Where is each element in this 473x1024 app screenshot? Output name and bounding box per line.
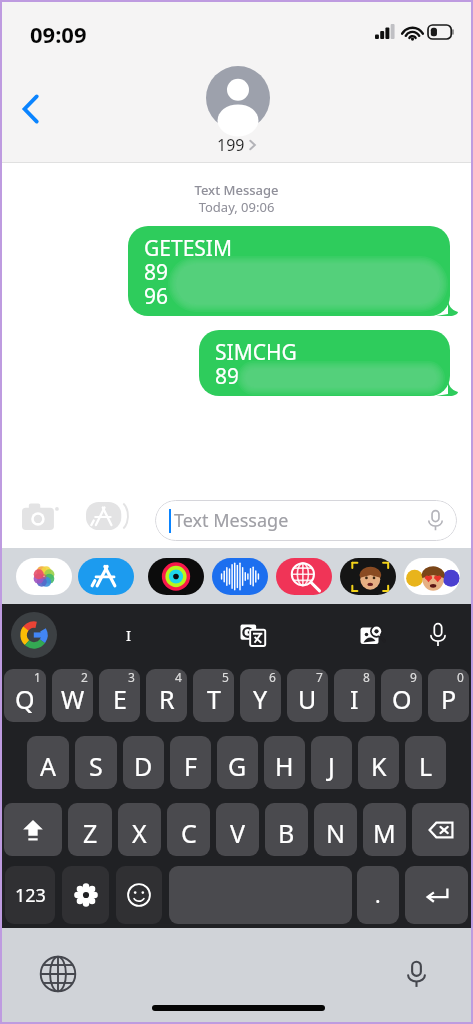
staticText: M bbox=[373, 816, 396, 850]
staticText: 3 bbox=[128, 669, 135, 685]
button[interactable]: Lens bbox=[356, 619, 388, 651]
button[interactable]: F bbox=[170, 736, 211, 789]
staticText: F bbox=[184, 749, 197, 783]
button[interactable]: Y bbox=[240, 669, 281, 722]
staticText: Text Message bbox=[0, 181, 473, 199]
button[interactable]: Switch keyboard bbox=[40, 956, 76, 992]
button[interactable]: L bbox=[405, 736, 446, 789]
staticText: 7 bbox=[316, 669, 323, 685]
staticText: 96 bbox=[144, 282, 169, 306]
button[interactable]: B bbox=[265, 803, 308, 856]
staticText: B bbox=[278, 816, 295, 850]
button[interactable]: Camera bbox=[16, 496, 62, 536]
staticText: H bbox=[275, 749, 294, 783]
button[interactable]: X bbox=[118, 803, 161, 856]
staticText: 89 bbox=[215, 362, 240, 386]
button[interactable]: Backspace bbox=[412, 803, 469, 856]
button[interactable]: GETESIM bbox=[128, 226, 458, 316]
staticText: 0 bbox=[457, 669, 464, 685]
button[interactable]: Photos bbox=[16, 558, 72, 595]
staticText: S bbox=[89, 749, 103, 783]
button[interactable]: Google bbox=[11, 612, 57, 658]
staticText: T bbox=[207, 682, 221, 716]
button[interactable]: Dictation bbox=[398, 956, 434, 992]
button[interactable]: R bbox=[146, 669, 187, 722]
button[interactable]: S bbox=[75, 736, 117, 789]
staticText: Q bbox=[15, 682, 35, 716]
button[interactable]: C bbox=[167, 803, 210, 856]
staticText: 123 bbox=[15, 883, 46, 908]
button[interactable]: SIMCHG bbox=[199, 330, 458, 396]
staticText: N bbox=[326, 816, 346, 850]
button[interactable]: . bbox=[357, 866, 399, 924]
button[interactable]: N bbox=[314, 803, 357, 856]
button[interactable]: U bbox=[287, 669, 328, 722]
button[interactable]: Back bbox=[8, 86, 54, 132]
button[interactable]: Z bbox=[68, 803, 112, 856]
staticText: SIMCHG bbox=[215, 338, 297, 362]
staticText: 6 bbox=[269, 669, 276, 685]
button[interactable]: M bbox=[363, 803, 406, 856]
staticText: K bbox=[371, 749, 387, 783]
staticText: 2 bbox=[81, 669, 88, 685]
staticText: Y bbox=[253, 682, 268, 716]
staticText: D bbox=[134, 749, 153, 783]
button[interactable]: Text Message bbox=[155, 500, 457, 541]
staticText: V bbox=[230, 816, 246, 850]
button[interactable]: V bbox=[216, 803, 259, 856]
button[interactable]: Memoji sticker bbox=[404, 558, 460, 595]
button[interactable]: Images bbox=[276, 558, 332, 595]
button[interactable]: K bbox=[358, 736, 399, 789]
staticText: P bbox=[441, 682, 457, 716]
staticText: Today, 09:06 bbox=[0, 198, 473, 216]
button[interactable]: Emoji bbox=[116, 866, 162, 924]
button[interactable]: Space bbox=[169, 866, 352, 924]
button[interactable]: P bbox=[428, 669, 469, 722]
staticText: 199 bbox=[217, 134, 245, 156]
staticText: C bbox=[181, 816, 197, 850]
staticText: U bbox=[298, 682, 317, 716]
staticText: GETESIM bbox=[144, 234, 233, 258]
button[interactable]: Translate bbox=[237, 619, 269, 651]
button[interactable]: H bbox=[264, 736, 305, 789]
staticText: 9 bbox=[410, 669, 417, 685]
staticText: Z bbox=[83, 816, 98, 850]
button[interactable]: 123 bbox=[5, 866, 55, 924]
button[interactable]: Settings bbox=[62, 866, 109, 924]
button[interactable]: I bbox=[334, 669, 375, 722]
button[interactable]: Enter bbox=[405, 866, 468, 924]
button[interactable]: J bbox=[311, 736, 352, 789]
button[interactable]: Memoji bbox=[340, 558, 396, 595]
staticText: I bbox=[126, 625, 132, 645]
button[interactable]: T bbox=[193, 669, 234, 722]
staticText: J bbox=[328, 749, 335, 783]
staticText: E bbox=[113, 682, 127, 716]
staticText: 5 bbox=[222, 669, 229, 685]
staticText: 4 bbox=[175, 669, 182, 685]
button[interactable]: Apps bbox=[82, 496, 132, 536]
button[interactable]: E bbox=[99, 669, 140, 722]
staticText: 8 bbox=[363, 669, 370, 685]
button[interactable]: O bbox=[381, 669, 422, 722]
button[interactable]: Voice memo bbox=[212, 558, 268, 595]
staticText: 89 bbox=[144, 258, 169, 282]
staticText: O bbox=[392, 682, 412, 716]
button[interactable]: W bbox=[52, 669, 93, 722]
button[interactable]: App Store bbox=[78, 558, 134, 595]
staticText: 1 bbox=[34, 669, 41, 685]
staticText: A bbox=[40, 749, 56, 783]
staticText: R bbox=[159, 682, 175, 716]
staticText: . bbox=[375, 881, 381, 910]
staticText: 09:09 bbox=[30, 19, 87, 49]
staticText: X bbox=[132, 816, 147, 850]
button[interactable]: A bbox=[27, 736, 69, 789]
button[interactable]: Q bbox=[4, 669, 46, 722]
button[interactable]: Contact 199 bbox=[206, 66, 270, 130]
button[interactable]: G bbox=[217, 736, 258, 789]
staticText: W bbox=[61, 682, 85, 716]
button[interactable]: Shift bbox=[4, 803, 62, 856]
button[interactable]: Fitness bbox=[148, 558, 204, 595]
button[interactable]: D bbox=[123, 736, 164, 789]
staticText: L bbox=[419, 749, 433, 783]
button[interactable]: Voice input bbox=[422, 619, 454, 651]
